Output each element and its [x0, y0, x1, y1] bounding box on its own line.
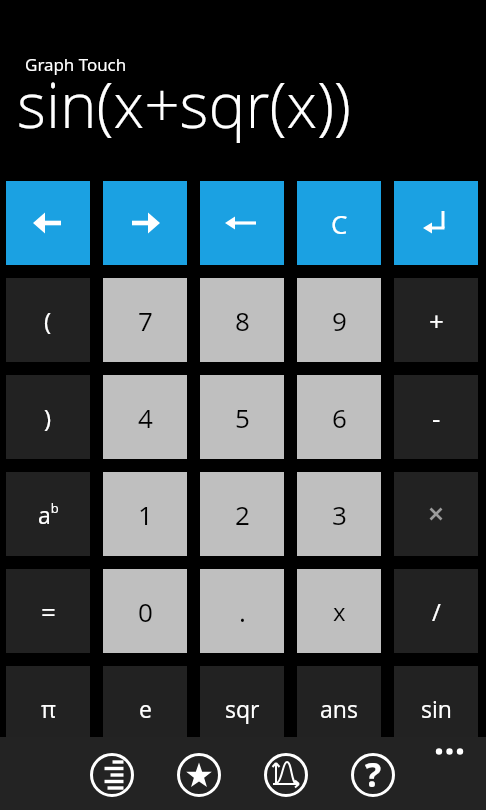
- staticText: π: [41, 693, 56, 724]
- button[interactable]: [103, 181, 187, 265]
- button[interactable]: (: [6, 278, 90, 362]
- staticText: 4: [138, 400, 153, 435]
- button[interactable]: ab: [6, 472, 90, 556]
- button[interactable]: C: [297, 181, 381, 265]
- button[interactable]: =: [6, 569, 90, 653]
- staticText: x: [333, 595, 346, 628]
- staticText: ab: [38, 499, 59, 530]
- button[interactable]: 0: [103, 569, 187, 653]
- staticText: 9: [332, 303, 347, 338]
- staticText: .: [239, 594, 246, 629]
- button[interactable]: [176, 752, 222, 798]
- staticText: 1: [138, 497, 153, 532]
- staticText: 5: [235, 400, 250, 435]
- button[interactable]: ans: [297, 666, 381, 750]
- button[interactable]: [89, 752, 135, 798]
- staticText: ): [44, 401, 52, 434]
- staticText: 6: [332, 400, 347, 435]
- button[interactable]: 5: [200, 375, 284, 459]
- button[interactable]: 1: [103, 472, 187, 556]
- button[interactable]: ?: [350, 752, 396, 798]
- button[interactable]: 2: [200, 472, 284, 556]
- button[interactable]: sqr: [200, 666, 284, 750]
- button[interactable]: sin: [394, 666, 478, 750]
- staticText: +: [429, 303, 444, 338]
- staticText: ans: [320, 693, 358, 724]
- staticText: 3: [332, 497, 347, 532]
- staticText: 2: [235, 497, 250, 532]
- button[interactable]: 9: [297, 278, 381, 362]
- button[interactable]: ): [6, 375, 90, 459]
- button[interactable]: [394, 181, 478, 265]
- staticText: sin: [421, 693, 452, 724]
- button[interactable]: .: [200, 569, 284, 653]
- staticText: -: [432, 400, 441, 435]
- staticText: =: [41, 594, 56, 629]
- staticText: ?: [365, 751, 382, 797]
- staticText: (: [44, 304, 52, 337]
- button[interactable]: -: [394, 375, 478, 459]
- staticText: sqr: [225, 693, 260, 724]
- button[interactable]: [394, 472, 478, 556]
- button[interactable]: [263, 752, 309, 798]
- button[interactable]: x: [297, 569, 381, 653]
- button[interactable]: e: [103, 666, 187, 750]
- button[interactable]: π: [6, 666, 90, 750]
- button[interactable]: 4: [103, 375, 187, 459]
- button[interactable]: 6: [297, 375, 381, 459]
- staticText: C: [331, 206, 348, 241]
- staticText: 0: [138, 594, 153, 629]
- staticText: Graph Touch: [25, 53, 127, 76]
- button[interactable]: 7: [103, 278, 187, 362]
- button[interactable]: +: [394, 278, 478, 362]
- staticText: 7: [138, 303, 153, 338]
- staticText: /: [432, 595, 441, 628]
- staticText: sin(x+sqr(x)): [17, 62, 351, 146]
- button[interactable]: [200, 181, 284, 265]
- button[interactable]: 3: [297, 472, 381, 556]
- staticText: 8: [235, 303, 250, 338]
- button[interactable]: /: [394, 569, 478, 653]
- button[interactable]: 8: [200, 278, 284, 362]
- staticText: e: [139, 693, 152, 724]
- button[interactable]: [6, 181, 90, 265]
